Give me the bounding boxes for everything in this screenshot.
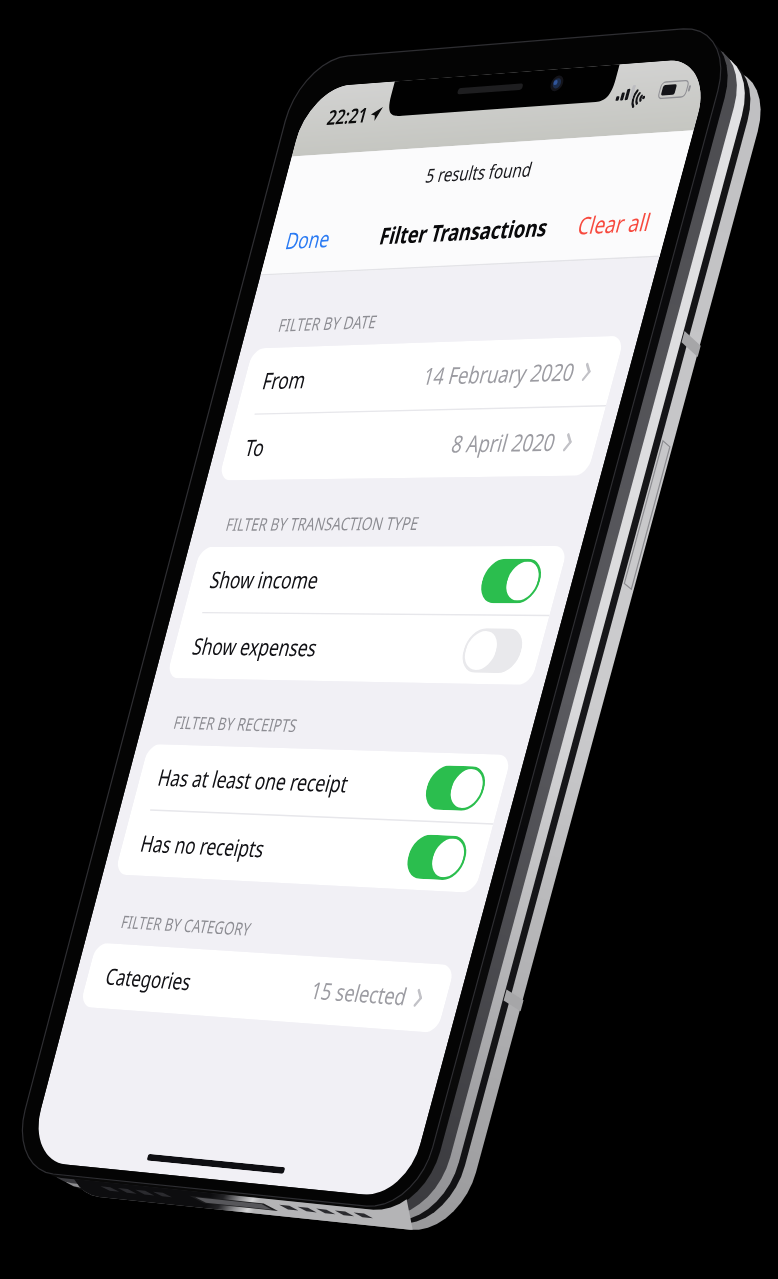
button[interactable]: Enabled bbox=[293, 552, 346, 584]
button[interactable]: From bbox=[12, 195, 363, 244]
staticText: 15 selected bbox=[236, 657, 326, 680]
button[interactable]: Disabled bbox=[293, 403, 346, 435]
button[interactable]: Show expenses bbox=[12, 394, 363, 443]
button[interactable]: Show income bbox=[12, 344, 363, 393]
button[interactable]: Clear all bbox=[294, 103, 359, 126]
button[interactable]: Has no receipts bbox=[12, 543, 363, 592]
staticText: 14 February 2020 bbox=[187, 208, 326, 231]
staticText: FILTER BY CATEGORY bbox=[32, 618, 162, 636]
button[interactable]: Enabled bbox=[293, 353, 346, 385]
button[interactable]: Has at least one receipt bbox=[12, 493, 363, 542]
staticText: Clear all bbox=[294, 103, 359, 126]
button[interactable]: Categories bbox=[12, 644, 363, 693]
button[interactable]: Enabled bbox=[293, 502, 346, 534]
staticText: 8 April 2020 bbox=[231, 258, 326, 281]
button[interactable]: To bbox=[12, 245, 363, 294]
staticText: Has at least one receipt bbox=[31, 506, 218, 529]
